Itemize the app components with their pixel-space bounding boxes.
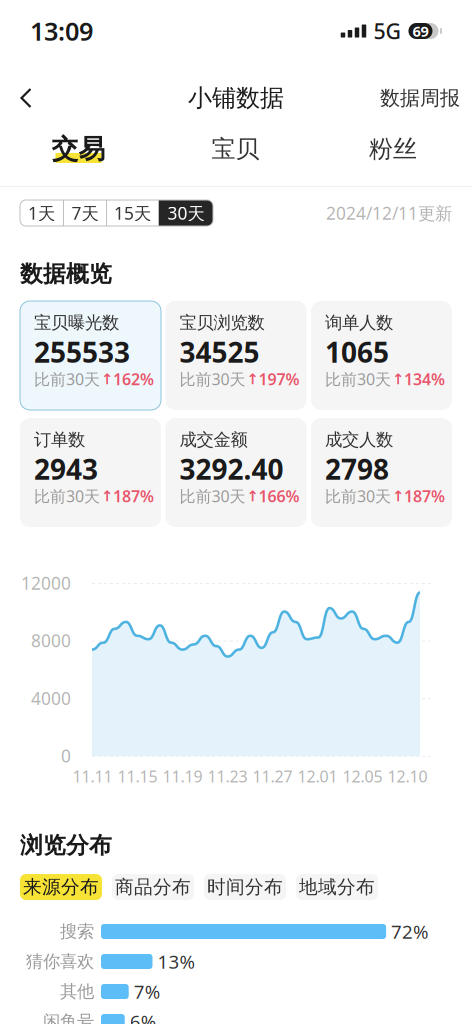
button[interactable]: 数据周报: [372, 75, 468, 121]
button[interactable]: 地域分布: [296, 874, 378, 900]
staticText: 187%: [404, 485, 445, 507]
staticText: 11.19: [162, 766, 202, 787]
staticText: 0: [61, 744, 71, 767]
staticText: 12.10: [387, 766, 427, 787]
staticText: 34525: [179, 333, 259, 370]
staticText: 2943: [34, 450, 98, 487]
staticText: 11.27: [252, 766, 292, 787]
staticText: 5G: [373, 17, 401, 45]
staticText: ↑: [246, 488, 258, 504]
button[interactable]: 订单数: [20, 418, 161, 527]
button[interactable]: 30天: [159, 200, 213, 226]
staticText: 255533: [34, 333, 130, 370]
staticText: 2798: [325, 450, 389, 487]
staticText: 猜你喜欢: [26, 951, 94, 972]
button[interactable]: 成交人数: [311, 418, 452, 527]
staticText: 134%: [404, 368, 445, 390]
staticText: 比前30天: [179, 368, 245, 390]
staticText: 2024/12/11更新: [326, 201, 452, 224]
staticText: 11.11: [72, 766, 112, 787]
staticText: 商品分布: [115, 875, 191, 898]
staticText: 地域分布: [299, 875, 375, 898]
staticText: 12.01: [297, 766, 337, 787]
staticText: 比前30天: [179, 485, 245, 507]
button[interactable]: 粉丝: [369, 130, 417, 168]
staticText: 3292.40: [179, 450, 283, 487]
button[interactable]: 宝贝曝光数: [20, 301, 161, 410]
staticText: 187%: [113, 485, 154, 507]
staticText: 30天: [167, 201, 204, 224]
button[interactable]: 交易: [51, 130, 105, 168]
button[interactable]: 15天: [107, 200, 158, 226]
staticText: 6%: [130, 1009, 157, 1024]
staticText: 数据概览: [20, 260, 112, 288]
staticText: 搜索: [60, 921, 94, 942]
staticText: 8000: [31, 629, 71, 652]
staticText: 12000: [21, 571, 71, 594]
button[interactable]: 询单人数: [311, 301, 452, 410]
staticText: 13%: [157, 949, 195, 974]
staticText: 4000: [31, 687, 71, 710]
staticText: 浏览分布: [20, 832, 112, 859]
staticText: 数据周报: [380, 86, 460, 110]
staticText: 11.15: [117, 766, 157, 787]
staticText: 小铺数据: [188, 83, 284, 113]
staticText: 询单人数: [325, 312, 393, 333]
staticText: ↑: [101, 371, 113, 387]
staticText: 13:09: [30, 14, 93, 48]
button[interactable]: 返回: [4, 75, 48, 121]
staticText: 成交人数: [325, 429, 393, 450]
staticText: 15天: [114, 201, 151, 224]
button[interactable]: 商品分布: [112, 874, 194, 900]
staticText: ↑: [392, 371, 404, 387]
button[interactable]: 成交金额: [165, 418, 306, 527]
staticText: 12.05: [342, 766, 382, 787]
staticText: 成交金额: [179, 429, 247, 450]
staticText: ↑: [246, 371, 258, 387]
staticText: 比前30天: [34, 368, 100, 390]
staticText: 时间分布: [207, 875, 283, 898]
staticText: 交易: [51, 133, 105, 165]
button[interactable]: 宝贝: [211, 130, 259, 168]
staticText: ↑: [101, 488, 113, 504]
staticText: ↑: [392, 488, 404, 504]
staticText: 比前30天: [34, 485, 100, 507]
staticText: 宝贝浏览数: [179, 312, 264, 333]
staticText: 其他: [60, 981, 94, 1002]
staticText: 7%: [134, 979, 161, 1004]
button[interactable]: 时间分布: [204, 874, 286, 900]
staticText: 162%: [113, 368, 154, 390]
staticText: 1天: [28, 201, 55, 224]
staticText: 宝贝: [211, 134, 259, 164]
staticText: 166%: [258, 485, 299, 507]
staticText: 比前30天: [325, 368, 391, 390]
button[interactable]: 来源分布: [20, 874, 102, 900]
staticText: 72%: [391, 919, 429, 944]
staticText: 来源分布: [23, 875, 99, 898]
staticText: 宝贝曝光数: [34, 312, 119, 333]
staticText: 闲鱼号: [43, 1011, 94, 1024]
staticText: 订单数: [34, 429, 85, 450]
staticText: 7天: [71, 201, 98, 224]
staticText: 197%: [258, 368, 299, 390]
button[interactable]: 1天: [20, 200, 63, 226]
staticText: 11.23: [207, 766, 247, 787]
button[interactable]: 7天: [64, 200, 106, 226]
button[interactable]: 宝贝浏览数: [165, 301, 306, 410]
staticText: 1065: [325, 333, 389, 370]
staticText: 粉丝: [369, 134, 417, 164]
staticText: 69: [412, 21, 428, 41]
staticText: 比前30天: [325, 485, 391, 507]
